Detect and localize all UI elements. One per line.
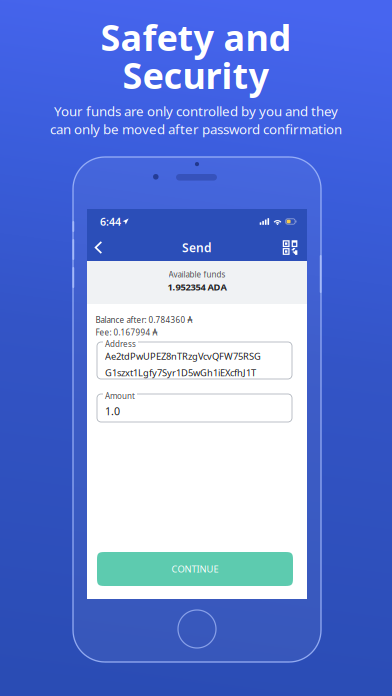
staticText: Fee: 0.167994 ₳ xyxy=(95,327,157,338)
staticText: Available funds xyxy=(168,269,225,280)
staticText: Amount xyxy=(105,390,135,401)
button[interactable]: Scan QR code xyxy=(279,234,300,261)
staticText: can only be moved after password confirm… xyxy=(50,120,342,138)
button[interactable]: CONTINUE xyxy=(97,552,293,586)
staticText: CONTINUE xyxy=(171,563,218,575)
staticText: Safety and xyxy=(100,13,291,61)
staticText: 1.0 xyxy=(105,404,120,418)
staticText: Send xyxy=(182,239,212,255)
staticText: Address xyxy=(105,338,136,349)
staticText: Security xyxy=(122,51,269,99)
staticText: G1szxt1Lgfy7Syr1D5wGh1iEXcfhJ1T xyxy=(105,366,256,379)
staticText: Balance after: 0.784360 ₳ xyxy=(95,314,192,325)
staticText: Your funds are only controlled by you an… xyxy=(54,102,338,120)
staticText: Ae2tdPwUPEZ8nTRzgVcvQFW75RSG xyxy=(105,350,261,362)
button[interactable]: Back xyxy=(88,234,109,261)
staticText: 6:44 xyxy=(100,214,121,229)
staticText: 1.952354 ADA xyxy=(167,281,226,293)
